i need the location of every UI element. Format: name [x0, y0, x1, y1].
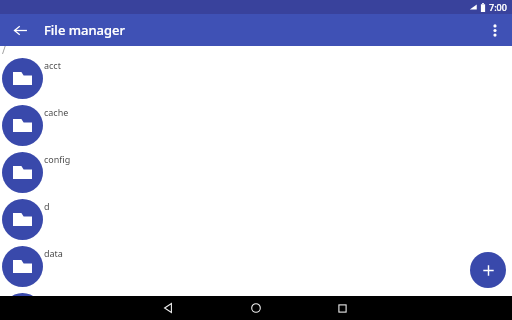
staticText: d	[44, 200, 50, 212]
button[interactable]: Recent apps	[330, 296, 354, 320]
staticText: config	[44, 153, 71, 165]
button[interactable]: More options	[481, 16, 509, 44]
staticText: /	[2, 43, 6, 57]
button[interactable]: config	[0, 149, 512, 196]
button[interactable]: acct	[0, 55, 512, 102]
staticText: File manager	[44, 21, 126, 39]
button[interactable]: Back	[6, 16, 34, 44]
button[interactable]: cache	[0, 102, 512, 149]
staticText: 7:00	[489, 1, 507, 13]
button[interactable]: Back	[156, 296, 180, 320]
button[interactable]: Add	[470, 252, 506, 288]
button[interactable]: Home	[244, 296, 268, 320]
button[interactable]: d	[0, 196, 512, 243]
button[interactable]: data	[0, 243, 512, 290]
staticText: dev	[44, 294, 60, 306]
staticText: cache	[44, 106, 69, 118]
staticText: data	[44, 247, 63, 259]
staticText: acct	[44, 59, 61, 71]
button[interactable]: dev	[0, 290, 512, 320]
